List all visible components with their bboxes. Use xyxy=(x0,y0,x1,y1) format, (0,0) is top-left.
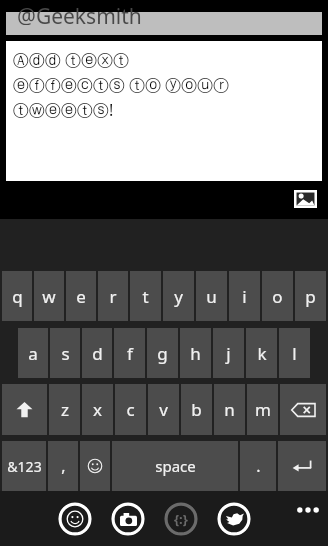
button[interactable]: @Geeksmith xyxy=(6,12,322,35)
button[interactable]: More options xyxy=(293,502,323,518)
button[interactable]: u xyxy=(196,271,227,321)
staticText: h xyxy=(190,342,201,365)
staticText: u xyxy=(206,285,217,308)
staticText: {:} xyxy=(174,510,188,528)
button[interactable]: e xyxy=(66,271,96,321)
button[interactable]: n xyxy=(214,384,245,435)
staticText: i xyxy=(242,285,247,308)
staticText: b xyxy=(191,398,202,421)
staticText: k xyxy=(257,342,267,365)
staticText: n xyxy=(224,398,235,421)
button[interactable]: Emoji xyxy=(80,441,110,491)
button[interactable]: y xyxy=(163,271,194,321)
button[interactable]: . xyxy=(240,441,276,491)
staticText: r xyxy=(109,285,117,308)
button[interactable]: b xyxy=(181,384,212,435)
button[interactable]: Camera xyxy=(111,502,145,536)
staticText: j xyxy=(226,342,231,365)
staticText: o xyxy=(272,285,283,308)
staticText: w xyxy=(42,285,56,308)
button[interactable]: k xyxy=(246,328,277,378)
staticText: d xyxy=(92,342,103,365)
button[interactable]: Shift xyxy=(2,384,47,435)
button[interactable]: Ⓐⓓⓓ ⓣⓔⓧⓣ ⓔⓕⓕⓔⓒⓣⓢ ⓣⓞ ⓨⓞⓤⓡ ⓣⓦⓔⓔⓣⓢ! xyxy=(6,41,322,181)
button[interactable]: t xyxy=(130,271,161,321)
button[interactable]: x xyxy=(82,384,113,435)
button[interactable]: j xyxy=(213,328,244,378)
staticText: g xyxy=(157,342,168,365)
button[interactable]: v xyxy=(148,384,179,435)
staticText: e xyxy=(76,285,86,308)
staticText: c xyxy=(126,398,135,421)
staticText: t xyxy=(142,285,149,308)
staticText: f xyxy=(127,342,133,365)
staticText: y xyxy=(174,285,183,308)
staticText: q xyxy=(12,285,23,308)
staticText: Ⓐⓓⓓ ⓣⓔⓧⓣ ⓔⓕⓕⓔⓒⓣⓢ ⓣⓞ ⓨⓞⓤⓡ ⓣⓦⓔⓔⓣⓢ! xyxy=(13,49,230,121)
button[interactable]: q xyxy=(2,271,32,321)
button[interactable]: c xyxy=(115,384,146,435)
button[interactable]: m xyxy=(247,384,278,435)
staticText: , xyxy=(61,455,66,477)
button[interactable]: Tweet xyxy=(217,502,251,536)
staticText: @Geeksmith xyxy=(17,2,142,25)
button[interactable]: a xyxy=(18,328,48,378)
staticText: z xyxy=(61,398,69,421)
button[interactable]: Text effects xyxy=(164,502,198,536)
button[interactable]: s xyxy=(50,328,80,378)
button[interactable]: space xyxy=(112,441,238,491)
button[interactable]: p xyxy=(295,271,326,321)
staticText: x xyxy=(93,398,102,421)
button[interactable]: r xyxy=(98,271,128,321)
staticText: m xyxy=(255,398,271,421)
button[interactable]: g xyxy=(147,328,178,378)
staticText: . xyxy=(256,455,261,477)
staticText: a xyxy=(28,342,38,365)
staticText: p xyxy=(305,285,316,308)
button[interactable]: w xyxy=(34,271,64,321)
staticText: l xyxy=(292,342,297,365)
button[interactable]: Emoji xyxy=(58,502,92,536)
button[interactable]: f xyxy=(114,328,145,378)
button[interactable]: &123 xyxy=(2,441,46,491)
button[interactable]: z xyxy=(49,384,80,435)
button[interactable]: Enter xyxy=(278,441,326,491)
staticText: s xyxy=(61,342,70,365)
staticText: v xyxy=(159,398,168,421)
button[interactable]: d xyxy=(82,328,112,378)
staticText: &123 xyxy=(7,457,42,476)
button[interactable]: h xyxy=(180,328,211,378)
button[interactable]: o xyxy=(262,271,293,321)
button[interactable]: Attached photo xyxy=(294,190,317,208)
button[interactable]: Backspace xyxy=(280,384,326,435)
button[interactable]: i xyxy=(229,271,260,321)
staticText: space xyxy=(155,456,196,476)
button[interactable]: , xyxy=(48,441,78,491)
button[interactable]: l xyxy=(279,328,310,378)
